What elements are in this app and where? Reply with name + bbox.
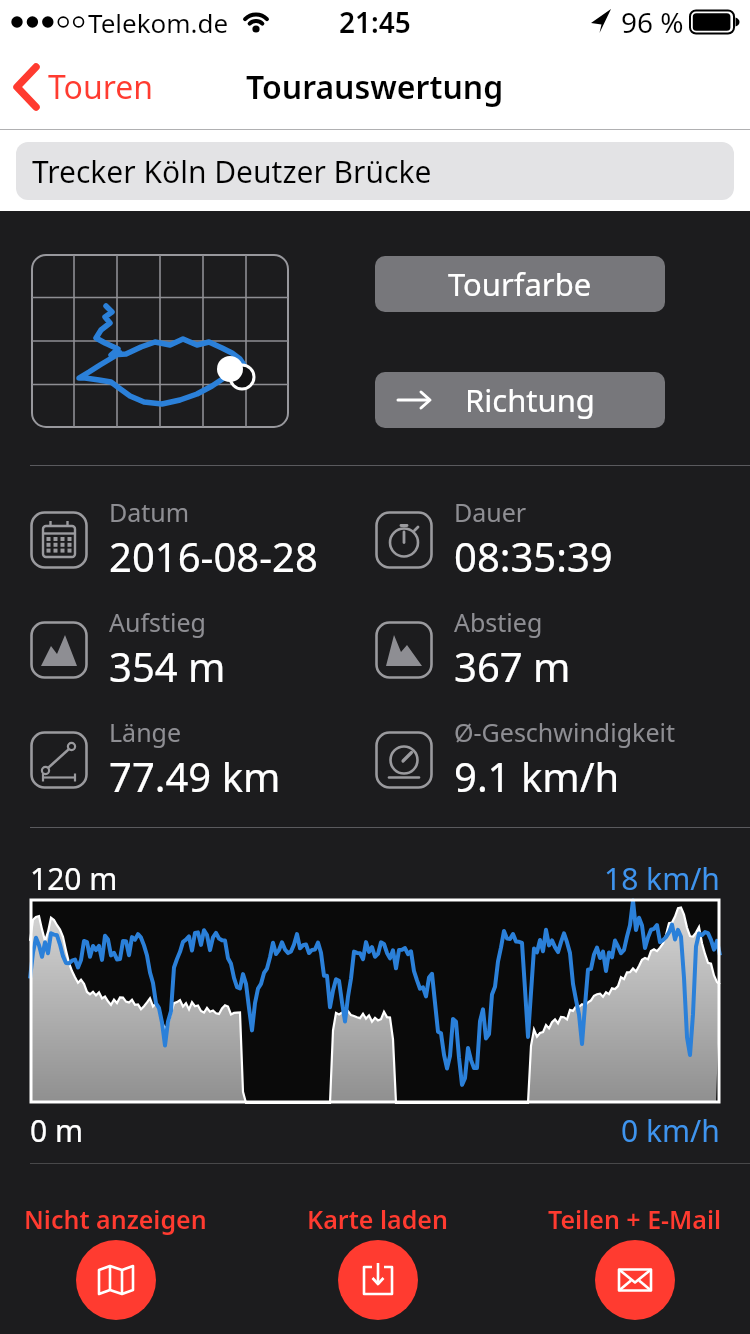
- staticText: Länge: [109, 715, 182, 749]
- staticText: Abstieg: [454, 605, 543, 639]
- button[interactable]: Tourfarbe: [375, 256, 665, 312]
- staticText: 0 m: [30, 1110, 84, 1151]
- staticText: Touren: [48, 65, 154, 109]
- staticText: Telekom.de: [88, 5, 229, 40]
- staticText: Nicht anzeigen: [24, 1202, 207, 1236]
- staticText: 9.1 km/h: [454, 749, 620, 795]
- staticText: Tourfarbe: [448, 263, 592, 305]
- staticText: 2016-08-28: [109, 529, 318, 575]
- staticText: Dauer: [454, 495, 527, 529]
- staticText: 77.49 km: [109, 749, 281, 795]
- button[interactable]: Touren: [12, 63, 154, 111]
- staticText: 354 m: [109, 639, 226, 685]
- staticText: Ø-Geschwindigkeit: [454, 715, 675, 749]
- staticText: 08:35:39: [454, 529, 613, 575]
- button[interactable]: Richtung: [375, 372, 665, 428]
- button[interactable]: Trecker Köln Deutzer Brücke: [16, 142, 734, 200]
- staticText: 96 %: [621, 3, 684, 41]
- staticText: 21:45: [339, 3, 411, 41]
- staticText: 18 km/h: [604, 858, 720, 899]
- button[interactable]: Karte laden: [307, 1202, 448, 1320]
- staticText: Datum: [109, 495, 190, 529]
- staticText: Richtung: [465, 379, 595, 421]
- staticText: Aufstieg: [109, 605, 206, 639]
- button[interactable]: Teilen + E-Mail: [548, 1202, 722, 1320]
- staticText: 367 m: [454, 639, 571, 685]
- button[interactable]: Nicht anzeigen: [24, 1202, 207, 1320]
- staticText: Karte laden: [307, 1202, 448, 1236]
- staticText: 0 km/h: [621, 1110, 720, 1151]
- staticText: Teilen + E-Mail: [548, 1202, 722, 1236]
- staticText: Trecker Köln Deutzer Brücke: [32, 151, 432, 192]
- staticText: Tourauswertung: [246, 65, 504, 109]
- staticText: 120 m: [30, 858, 118, 899]
